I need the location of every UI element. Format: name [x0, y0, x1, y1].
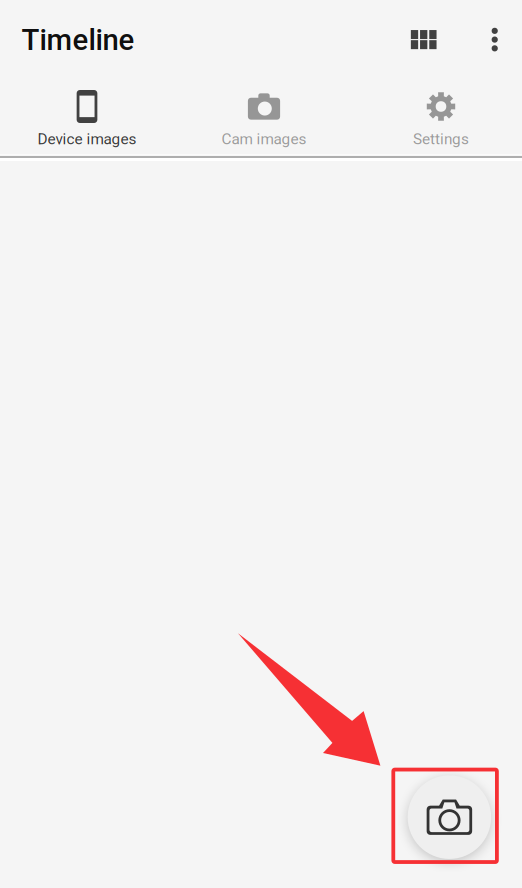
button[interactable]: Device images: [0, 78, 175, 156]
staticText: Timeline: [21, 23, 134, 57]
staticText: Device images: [37, 130, 136, 148]
staticText: Settings: [413, 130, 469, 148]
button[interactable]: Settings: [352, 78, 522, 156]
button[interactable]: Cam images: [175, 78, 352, 156]
staticText: Cam images: [221, 130, 306, 148]
button[interactable]: More options: [480, 16, 510, 63]
button[interactable]: Take photo: [408, 775, 491, 859]
button[interactable]: Grid view: [399, 18, 448, 61]
